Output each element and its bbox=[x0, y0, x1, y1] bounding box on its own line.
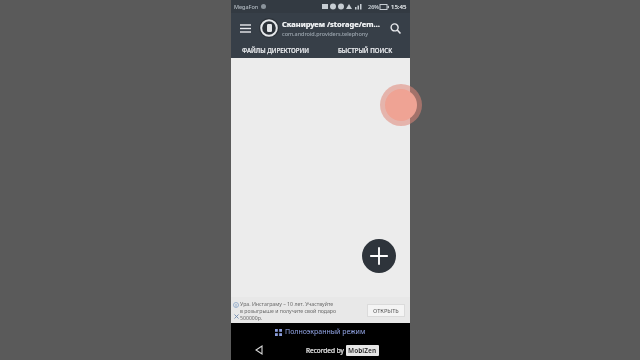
button[interactable]: Close ad bbox=[233, 313, 239, 319]
staticText: ОТКРЫТЬ bbox=[373, 307, 399, 315]
staticText: MobiZen bbox=[348, 346, 377, 355]
button[interactable]: Полноэкранный режим bbox=[231, 323, 410, 340]
button[interactable]: ФАЙЛЫ ДИРЕКТОРИИ bbox=[231, 42, 320, 58]
button[interactable]: Search bbox=[385, 18, 405, 38]
button[interactable]: Add bbox=[362, 239, 396, 273]
button[interactable]: Back bbox=[253, 343, 267, 357]
staticText: ФАЙЛЫ ДИРЕКТОРИИ bbox=[242, 46, 310, 54]
staticText: в розыгрыше и получите свой подаро bbox=[240, 307, 337, 314]
staticText: Полноэкранный режим bbox=[285, 327, 366, 337]
button[interactable]: Menu bbox=[235, 18, 255, 38]
staticText: MegaFon bbox=[234, 3, 259, 10]
staticText: 15:45 bbox=[391, 3, 407, 11]
staticText: 26% bbox=[368, 3, 379, 10]
staticText: Ура. Инстаграму – 10 лет. Участвуйте bbox=[240, 300, 334, 307]
staticText: БЫСТРЫЙ ПОИСК bbox=[338, 46, 393, 54]
staticText: Recorded by bbox=[306, 346, 346, 355]
button[interactable]: БЫСТРЫЙ ПОИСК bbox=[320, 42, 410, 58]
staticText: 500000р. bbox=[240, 314, 263, 321]
staticText: Сканируем /storage/emul… bbox=[282, 19, 383, 29]
button[interactable]: Ad info bbox=[233, 302, 239, 308]
button[interactable]: ОТКРЫТЬ bbox=[367, 304, 405, 317]
staticText: com.android.providers.telephony bbox=[282, 30, 368, 37]
